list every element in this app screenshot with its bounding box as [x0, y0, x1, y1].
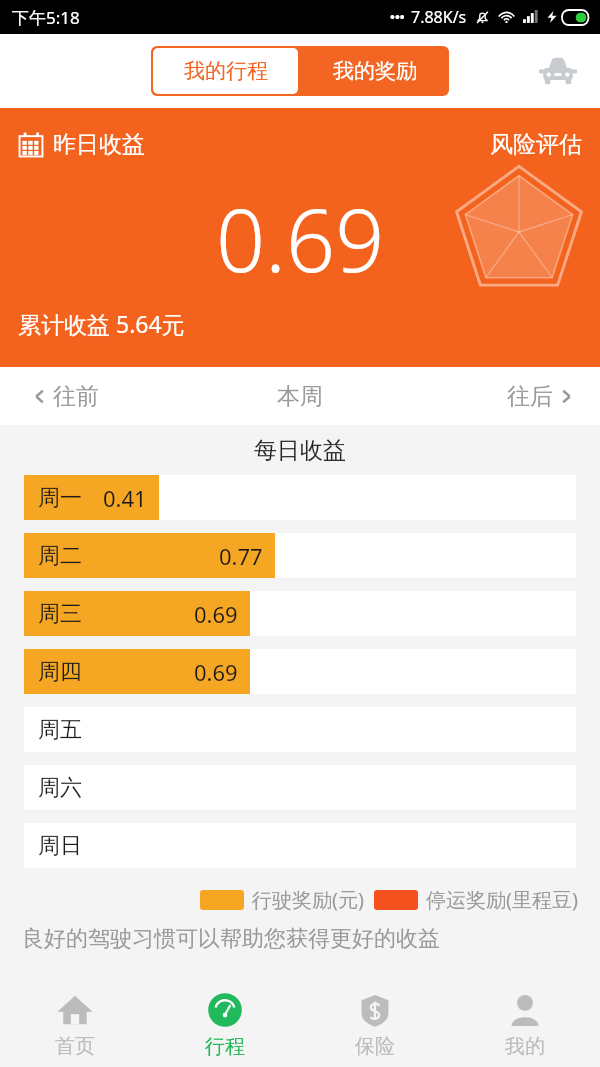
staticText: 下午5:18	[12, 6, 80, 29]
staticText: 我的行程	[184, 58, 268, 84]
button[interactable]: 我的	[450, 980, 600, 1067]
staticText: 周二	[38, 542, 82, 570]
staticText: 7.88K/s	[411, 6, 467, 28]
staticText: 行驶奖励(元)	[252, 886, 364, 913]
button[interactable]: 我的奖励	[300, 46, 449, 96]
staticText: 周三	[38, 600, 82, 628]
button[interactable]: 行程	[150, 980, 300, 1067]
staticText: 往前	[53, 382, 99, 411]
staticText: 0.69	[216, 180, 385, 297]
staticText: 累计收益 5.64元	[18, 308, 185, 339]
staticText: 良好的驾驶习惯可以帮助您获得更好的收益	[22, 925, 600, 953]
button[interactable]: 我的行程	[153, 48, 298, 94]
staticText: 0.69	[194, 599, 238, 629]
button[interactable]: 周三	[24, 591, 576, 636]
staticText: 0.69	[194, 657, 238, 687]
button[interactable]: 往后	[400, 367, 600, 425]
staticText: 周六	[38, 774, 82, 802]
staticText: 往后	[507, 382, 553, 411]
staticText: 首页	[55, 1034, 95, 1059]
button[interactable]: 风险评估	[490, 130, 582, 159]
staticText: 0.41	[103, 483, 147, 513]
staticText: 周五	[38, 716, 82, 744]
button[interactable]: 周二	[24, 533, 576, 578]
button[interactable]: 周日	[24, 823, 576, 868]
button[interactable]: My car	[532, 45, 584, 97]
staticText: 本周	[277, 382, 323, 411]
staticText: 行程	[205, 1034, 245, 1059]
staticText: 昨日收益	[53, 130, 145, 159]
staticText: 停运奖励(里程豆)	[426, 886, 578, 913]
staticText: 每日收益	[254, 436, 346, 465]
button[interactable]: 往前	[0, 367, 200, 425]
staticText: 周四	[38, 658, 82, 686]
staticText: 我的奖励	[333, 58, 417, 84]
staticText: 周日	[38, 832, 82, 860]
staticText: 0.77	[219, 541, 263, 571]
button[interactable]: 周四	[24, 649, 576, 694]
button[interactable]: 周五	[24, 707, 576, 752]
button[interactable]: 周一	[24, 475, 576, 520]
button[interactable]: 周六	[24, 765, 576, 810]
button[interactable]: 保险	[300, 980, 450, 1067]
button[interactable]: 首页	[0, 980, 150, 1067]
staticText: 我的	[505, 1034, 545, 1059]
staticText: 周一	[38, 484, 82, 512]
staticText: 风险评估	[490, 130, 582, 159]
staticText: 保险	[355, 1034, 395, 1059]
button[interactable]: 本周	[200, 367, 400, 425]
staticText: •••	[390, 8, 405, 26]
